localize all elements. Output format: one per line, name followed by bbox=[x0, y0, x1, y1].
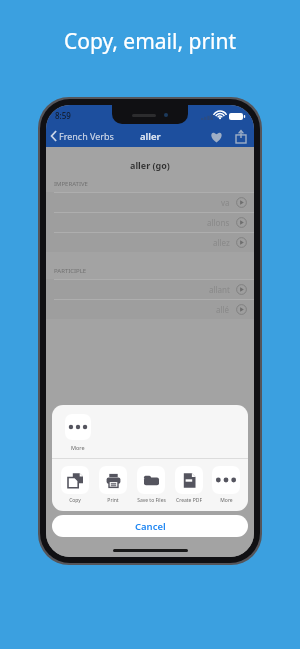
button[interactable]: allons bbox=[46, 212, 254, 232]
button[interactable]: Copy bbox=[56, 466, 94, 504]
button[interactable]: More bbox=[61, 414, 95, 451]
staticText: allé bbox=[216, 304, 230, 315]
button[interactable]: French Verbs bbox=[46, 127, 120, 145]
staticText: allez bbox=[213, 237, 230, 248]
staticText: More bbox=[220, 497, 233, 504]
button[interactable]: allant bbox=[46, 279, 254, 299]
staticText: Save to Files bbox=[137, 497, 166, 504]
button[interactable]: va bbox=[46, 192, 254, 212]
staticText: aller bbox=[140, 130, 161, 143]
button[interactable]: allé bbox=[46, 299, 254, 319]
staticText: 8:59 bbox=[55, 110, 71, 121]
staticText: va bbox=[221, 197, 230, 208]
staticText: Copy bbox=[69, 497, 81, 504]
staticText: aller (go) bbox=[130, 159, 170, 171]
button[interactable]: Favorite bbox=[206, 127, 227, 147]
button[interactable]: Print bbox=[94, 466, 132, 504]
button[interactable]: More bbox=[208, 466, 244, 504]
button[interactable]: Create PDF bbox=[170, 466, 208, 504]
staticText: IMPERATIVE bbox=[54, 180, 88, 188]
staticText: Cancel bbox=[135, 520, 166, 533]
button[interactable]: Save to Files bbox=[132, 466, 170, 504]
staticText: PARTICIPLE bbox=[54, 267, 87, 275]
staticText: Create PDF bbox=[176, 497, 202, 504]
button[interactable]: Cancel bbox=[52, 515, 248, 537]
staticText: allons bbox=[207, 217, 230, 228]
staticText: More bbox=[71, 444, 85, 451]
staticText: allant bbox=[209, 284, 230, 295]
button[interactable]: allez bbox=[46, 232, 254, 252]
button[interactable]: Share bbox=[232, 126, 250, 147]
staticText: Copy, email, print bbox=[0, 27, 300, 56]
staticText: Print bbox=[107, 497, 119, 504]
staticText: French Verbs bbox=[59, 130, 114, 142]
